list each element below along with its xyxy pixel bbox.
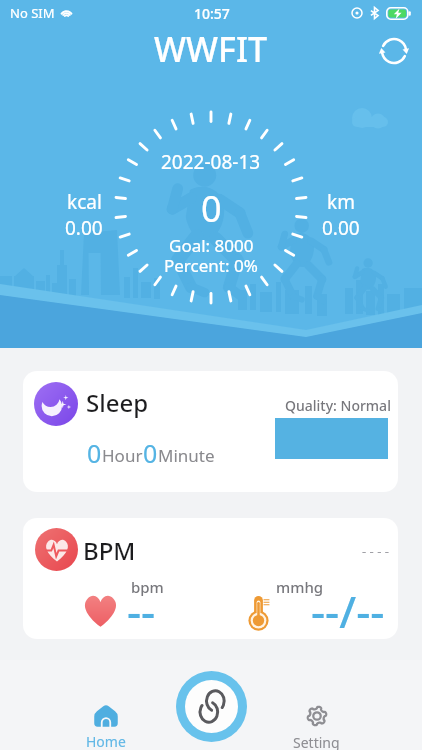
staticText: mmhg — [276, 577, 324, 597]
staticText: Quality: Normal — [285, 396, 391, 415]
button[interactable]: Sleep — [23, 371, 398, 492]
staticText: Sleep — [86, 386, 149, 419]
button[interactable]: Home — [66, 660, 146, 750]
staticText: 0 — [143, 436, 158, 470]
staticText: 0 — [201, 184, 222, 233]
staticText: - - - - — [362, 542, 389, 560]
staticText: WWFIT — [154, 26, 268, 70]
staticText: Percent: 0% — [164, 254, 258, 277]
staticText: km — [327, 189, 355, 215]
staticText: 0.00 — [65, 215, 103, 241]
staticText: Hour — [102, 444, 143, 467]
staticText: Home — [86, 732, 126, 750]
staticText: Goal: 8000 — [169, 234, 254, 257]
staticText: bpm — [131, 577, 164, 597]
button[interactable]: Setting — [276, 660, 356, 750]
staticText: Minute — [158, 444, 215, 467]
staticText: No SIM — [10, 4, 55, 22]
staticText: kcal — [67, 189, 102, 215]
staticText: --/-- — [311, 581, 385, 639]
staticText: 10:57 — [194, 4, 230, 23]
button[interactable]: BPM — [23, 518, 398, 639]
staticText: 0.00 — [322, 215, 360, 241]
button[interactable]: Refresh — [374, 31, 414, 71]
staticText: 2022-08-13 — [161, 149, 261, 175]
button[interactable]: Connect device — [176, 671, 247, 742]
staticText: Setting — [293, 733, 340, 750]
staticText: -- — [127, 581, 156, 639]
staticText: 0 — [87, 436, 102, 470]
staticText: BPM — [83, 534, 136, 567]
